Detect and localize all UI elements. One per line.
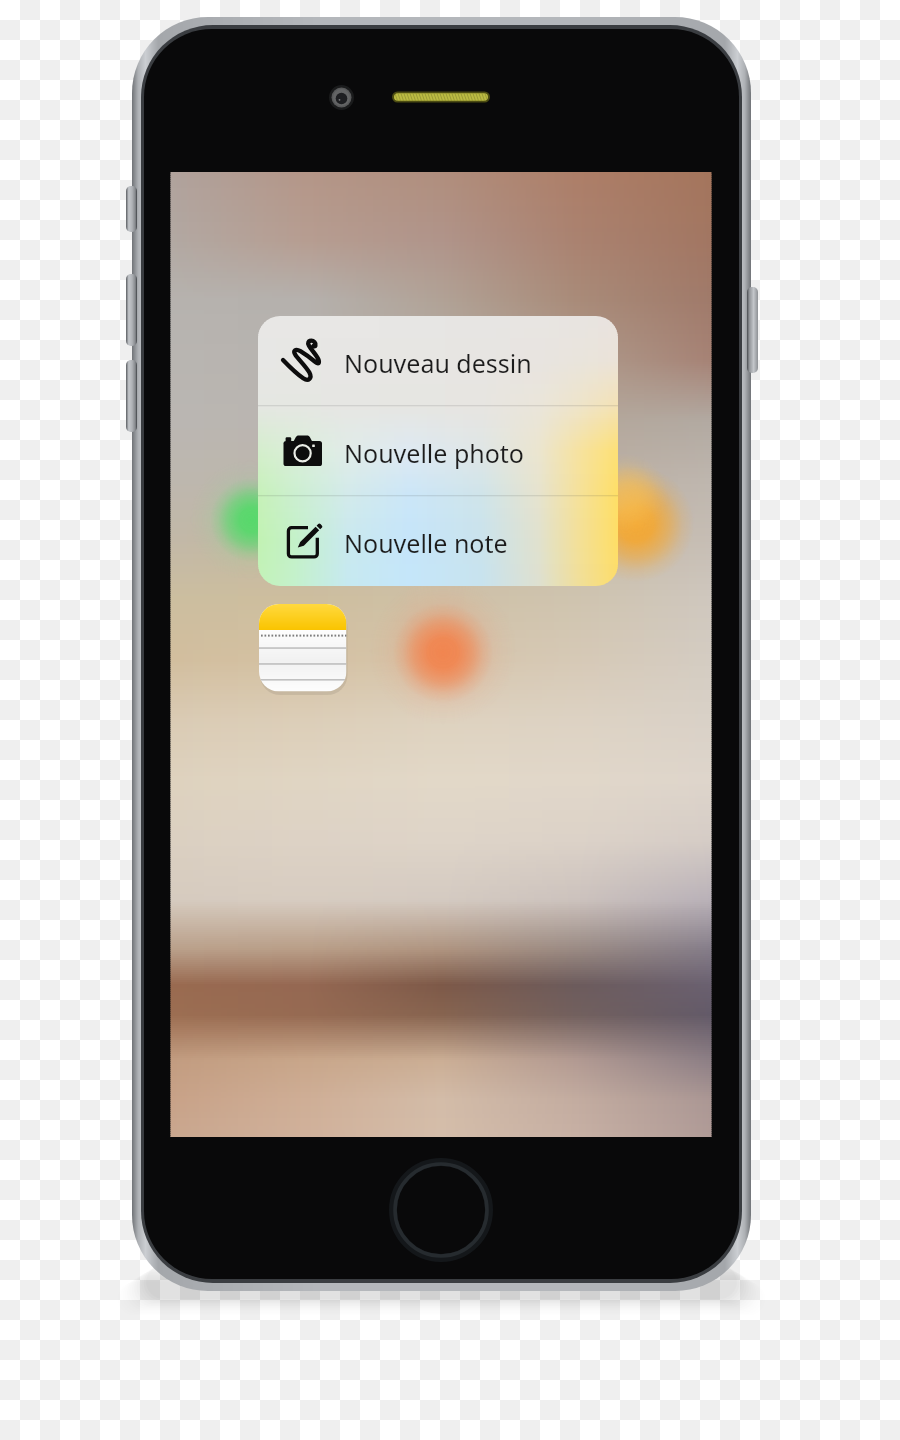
button[interactable]: Nouvelle photo (258, 406, 618, 496)
staticText: Nouveau dessin (344, 346, 532, 380)
staticText: Nouvelle photo (344, 436, 524, 470)
staticText: Nouvelle note (344, 526, 508, 560)
button[interactable]: Nouvelle note (258, 496, 618, 586)
button[interactable]: Nouveau dessin (258, 316, 618, 406)
